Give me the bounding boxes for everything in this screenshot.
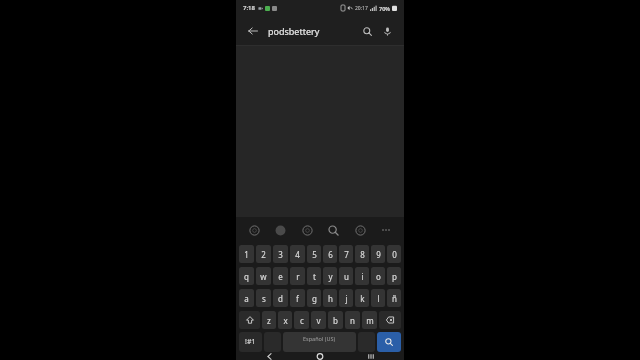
button[interactable]: 3 <box>273 245 288 263</box>
button[interactable]: b <box>328 311 343 329</box>
button[interactable]: c <box>294 311 309 329</box>
button[interactable]: r <box>290 267 305 285</box>
button[interactable]: 1 <box>239 245 254 263</box>
button[interactable]: 9 <box>371 245 385 263</box>
button[interactable]: 7 <box>339 245 353 263</box>
button[interactable]: j <box>339 289 353 307</box>
button[interactable]: v <box>311 311 326 329</box>
button[interactable]: ñ <box>387 289 401 307</box>
staticText: 70% <box>379 5 390 12</box>
staticText: z <box>267 315 271 326</box>
staticText: 8 <box>360 249 365 260</box>
staticText: i <box>361 271 364 282</box>
staticText: g <box>312 293 317 304</box>
staticText: h <box>328 293 333 304</box>
staticText: k <box>360 293 365 304</box>
staticText: s <box>262 293 266 304</box>
button[interactable]: w <box>256 267 271 285</box>
button[interactable]: 0 <box>387 245 401 263</box>
button[interactable]: g <box>307 289 321 307</box>
button[interactable]: 6 <box>323 245 337 263</box>
staticText: f <box>296 293 299 304</box>
button[interactable]: 4 <box>290 245 305 263</box>
button[interactable]: s <box>256 289 271 307</box>
button[interactable]: f <box>290 289 305 307</box>
button[interactable]: Search <box>377 332 401 352</box>
button[interactable]: podsbettery <box>268 25 358 37</box>
button[interactable]: l <box>371 289 385 307</box>
staticText: o <box>376 271 381 282</box>
staticText: 4 <box>295 249 300 260</box>
staticText: 5 <box>312 249 317 260</box>
button[interactable]: Search <box>358 22 376 40</box>
button[interactable]: !#1 <box>239 332 262 352</box>
staticText: j <box>345 293 348 304</box>
button[interactable]: y <box>323 267 337 285</box>
staticText: 2 <box>261 249 266 260</box>
button[interactable]: Sticker <box>272 222 288 238</box>
button[interactable]: Voice search <box>378 22 396 40</box>
button[interactable]: More options <box>378 222 394 238</box>
staticText: 3 <box>278 249 283 260</box>
button[interactable]: i <box>355 267 369 285</box>
button[interactable]: Search <box>325 222 341 238</box>
staticText: p <box>392 271 397 282</box>
button[interactable]: x <box>278 311 292 329</box>
button[interactable]: o <box>371 267 385 285</box>
button[interactable]: a <box>239 289 254 307</box>
staticText: d <box>278 293 283 304</box>
button[interactable]: GIF <box>299 222 315 238</box>
staticText: a <box>244 293 249 304</box>
button[interactable]: Emoji <box>246 222 262 238</box>
staticText: l <box>377 293 380 304</box>
staticText: !#1 <box>245 337 256 347</box>
staticText: 9 <box>376 249 381 260</box>
button[interactable]: q <box>239 267 254 285</box>
staticText: y <box>328 271 333 282</box>
staticText: r <box>296 271 300 282</box>
staticText: 1 <box>244 249 249 260</box>
button[interactable]: Backspace <box>379 311 401 329</box>
button[interactable]: Shift <box>239 311 260 329</box>
button[interactable]: 2 <box>256 245 271 263</box>
button[interactable]: 5 <box>307 245 321 263</box>
button[interactable]: d <box>273 289 288 307</box>
staticText: x <box>283 315 288 326</box>
staticText: w <box>260 271 267 282</box>
staticText: m <box>366 315 374 326</box>
button[interactable]: Home <box>313 353 327 360</box>
staticText: v <box>316 315 321 326</box>
button[interactable]: h <box>323 289 337 307</box>
button[interactable]: z <box>262 311 276 329</box>
button[interactable]: Back <box>262 353 276 360</box>
staticText: c <box>300 315 304 326</box>
staticText: b <box>333 315 338 326</box>
staticText: 6 <box>328 249 333 260</box>
staticText: Español (US) <box>303 335 336 342</box>
button[interactable]: n <box>345 311 360 329</box>
staticText: e <box>278 271 283 282</box>
button[interactable]: Back <box>244 22 262 40</box>
button[interactable]: p <box>387 267 401 285</box>
button[interactable]: Space <box>283 332 356 352</box>
staticText: ñ <box>392 293 397 304</box>
button[interactable]: e <box>273 267 288 285</box>
button[interactable]: Recents <box>364 353 378 360</box>
staticText: 20:17 <box>355 5 368 12</box>
staticText: t <box>313 271 316 282</box>
staticText: u <box>344 271 349 282</box>
button[interactable]: t <box>307 267 321 285</box>
button[interactable]: m <box>362 311 377 329</box>
staticText: 7:18 <box>243 4 255 12</box>
button[interactable]: 8 <box>355 245 369 263</box>
button[interactable]: u <box>339 267 353 285</box>
staticText: 0 <box>392 249 397 260</box>
button[interactable]: k <box>355 289 369 307</box>
staticText: podsbettery <box>268 25 320 37</box>
staticText: 7 <box>344 249 349 260</box>
staticText: q <box>244 271 249 282</box>
staticText: n <box>350 315 355 326</box>
button[interactable]: Settings <box>352 222 368 238</box>
